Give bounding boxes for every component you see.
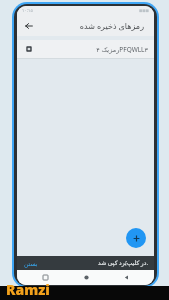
- staticText: در کلیپ‌بُرد کپی شد.: [98, 259, 148, 267]
- button[interactable]: Copy: [23, 43, 35, 55]
- button[interactable]: Recent apps: [33, 270, 57, 285]
- button[interactable]: Copy: [17, 40, 154, 58]
- staticText: بستن: [24, 260, 38, 267]
- button[interactable]: Home: [74, 270, 98, 285]
- staticText: رمزهای ذخیره شده: [79, 20, 144, 31]
- button[interactable]: بستن: [23, 259, 39, 268]
- staticText: ◾◾◾: [139, 8, 149, 13]
- staticText: رمزیک ۴PFQWLL۳: [96, 45, 148, 54]
- button[interactable]: Back: [114, 270, 138, 285]
- staticText: ۱۰:۱۵: [22, 7, 33, 13]
- button[interactable]: Back: [20, 17, 37, 34]
- button[interactable]: Add password: [126, 228, 146, 248]
- staticText: Ramzi: [6, 280, 50, 299]
